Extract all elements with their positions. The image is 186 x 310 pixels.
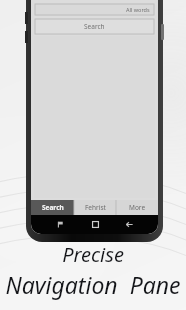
button[interactable]: Fehrist [74,200,116,215]
button[interactable]: All words [35,4,154,15]
staticText: Precise [62,241,124,268]
button[interactable]: Recents [43,215,78,234]
button[interactable]: Home [78,215,112,234]
staticText: Search [42,203,64,212]
button[interactable]: Search [35,19,154,34]
staticText: More [129,203,146,212]
staticText: Fehrist [85,203,106,212]
staticText: Navigation Pane [5,269,181,300]
staticText: All words [126,6,150,13]
button[interactable]: Back [112,215,146,234]
staticText: Search [84,22,105,31]
button[interactable]: Search [31,200,74,215]
button[interactable]: More [116,200,158,215]
